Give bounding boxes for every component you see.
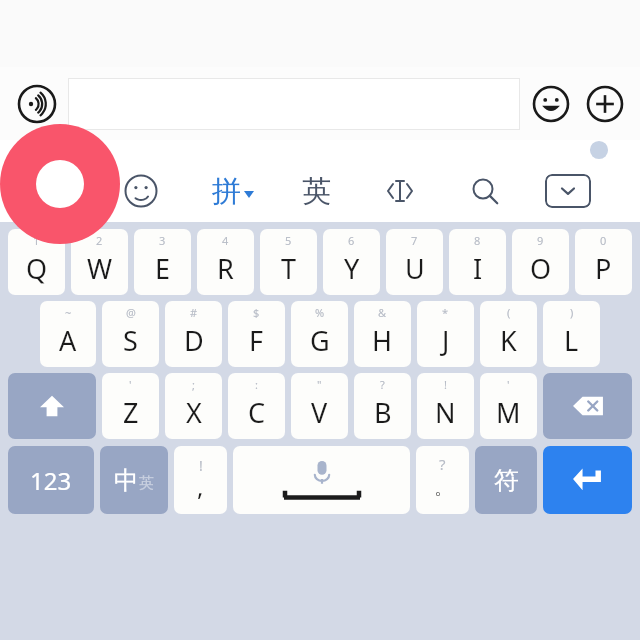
staticText: 0: [600, 233, 607, 248]
staticText: #: [190, 305, 198, 320]
staticText: 4: [222, 233, 229, 248]
staticText: P: [595, 250, 612, 287]
staticText: W: [87, 250, 113, 287]
button[interactable]: ?: [354, 373, 411, 439]
staticText: ": [317, 377, 322, 392]
button[interactable]: 3: [134, 229, 191, 295]
staticText: M: [496, 394, 521, 431]
staticText: ?: [439, 454, 446, 474]
staticText: N: [435, 394, 456, 431]
staticText: J: [442, 322, 450, 359]
staticText: B: [374, 394, 392, 431]
staticText: ~: [65, 305, 72, 320]
button[interactable]: 7: [386, 229, 443, 295]
staticText: 3: [159, 233, 166, 248]
button[interactable]: Emoji: [530, 83, 572, 125]
staticText: D: [184, 322, 204, 359]
staticText: $: [253, 305, 260, 320]
staticText: 符: [494, 465, 519, 496]
staticText: *: [442, 305, 449, 320]
staticText: 拼: [212, 173, 241, 210]
staticText: 5: [285, 233, 292, 248]
staticText: T: [281, 250, 297, 287]
button[interactable]: &: [354, 301, 411, 367]
staticText: S: [123, 322, 138, 359]
staticText: 2: [96, 233, 103, 248]
staticText: 英: [302, 173, 331, 210]
button[interactable]: 拼: [208, 169, 258, 214]
button[interactable]: Hide keyboard: [545, 174, 591, 208]
button[interactable]: ?: [416, 446, 469, 514]
button[interactable]: Search: [461, 168, 507, 214]
button[interactable]: Backspace: [543, 373, 632, 439]
staticText: E: [155, 250, 171, 287]
staticText: (: [507, 305, 511, 320]
button[interactable]: Language: [100, 446, 168, 514]
staticText: Y: [344, 250, 360, 287]
staticText: 6: [348, 233, 355, 248]
button[interactable]: Voice input: [16, 83, 58, 125]
button[interactable]: @: [102, 301, 159, 367]
staticText: F: [249, 322, 264, 359]
staticText: ): [570, 305, 574, 320]
staticText: ,: [197, 470, 204, 503]
button[interactable]: ;: [165, 373, 222, 439]
button[interactable]: 0: [575, 229, 632, 295]
staticText: 。: [434, 477, 452, 500]
staticText: 123: [30, 464, 72, 497]
button[interactable]: !: [174, 446, 227, 514]
button[interactable]: 4: [197, 229, 254, 295]
button[interactable]: :: [228, 373, 285, 439]
button[interactable]: 2: [71, 229, 128, 295]
staticText: ?: [380, 377, 385, 392]
button[interactable]: !: [417, 373, 474, 439]
staticText: G: [310, 322, 330, 359]
button[interactable]: Numbers: [8, 446, 94, 514]
staticText: I: [473, 250, 483, 287]
button[interactable]: ': [102, 373, 159, 439]
button[interactable]: ": [291, 373, 348, 439]
button[interactable]: %: [291, 301, 348, 367]
button[interactable]: 英: [298, 169, 335, 214]
button[interactable]: 9: [512, 229, 569, 295]
button[interactable]: Shift: [8, 373, 96, 439]
button[interactable]: Space: [233, 446, 410, 514]
staticText: H: [372, 322, 393, 359]
staticText: !: [199, 456, 203, 475]
button[interactable]: 5: [260, 229, 317, 295]
button[interactable]: Emoticons: [118, 168, 164, 214]
staticText: @: [126, 305, 136, 320]
staticText: 8: [474, 233, 481, 248]
staticText: O: [530, 250, 552, 287]
staticText: 9: [537, 233, 544, 248]
staticText: ': [507, 377, 510, 392]
button[interactable]: Move cursor: [377, 168, 423, 214]
button[interactable]: [68, 78, 520, 130]
staticText: 中: [114, 465, 139, 496]
button[interactable]: ~: [40, 301, 96, 367]
staticText: Q: [26, 250, 48, 287]
button[interactable]: ): [543, 301, 600, 367]
staticText: Z: [123, 394, 139, 431]
button[interactable]: 8: [449, 229, 506, 295]
staticText: U: [405, 250, 425, 287]
button[interactable]: Symbols: [475, 446, 537, 514]
button[interactable]: ': [480, 373, 537, 439]
button[interactable]: 1: [8, 229, 65, 295]
staticText: 7: [411, 233, 418, 248]
button[interactable]: $: [228, 301, 285, 367]
staticText: L: [564, 322, 579, 359]
staticText: &: [378, 305, 387, 320]
staticText: C: [248, 394, 266, 431]
button[interactable]: Enter: [543, 446, 632, 514]
staticText: V: [311, 394, 328, 431]
staticText: A: [59, 322, 77, 359]
button[interactable]: (: [480, 301, 537, 367]
button[interactable]: 6: [323, 229, 380, 295]
staticText: :: [255, 377, 258, 392]
button[interactable]: *: [417, 301, 474, 367]
staticText: %: [315, 305, 325, 320]
button[interactable]: #: [165, 301, 222, 367]
button[interactable]: Add: [584, 83, 626, 125]
staticText: K: [500, 322, 517, 359]
